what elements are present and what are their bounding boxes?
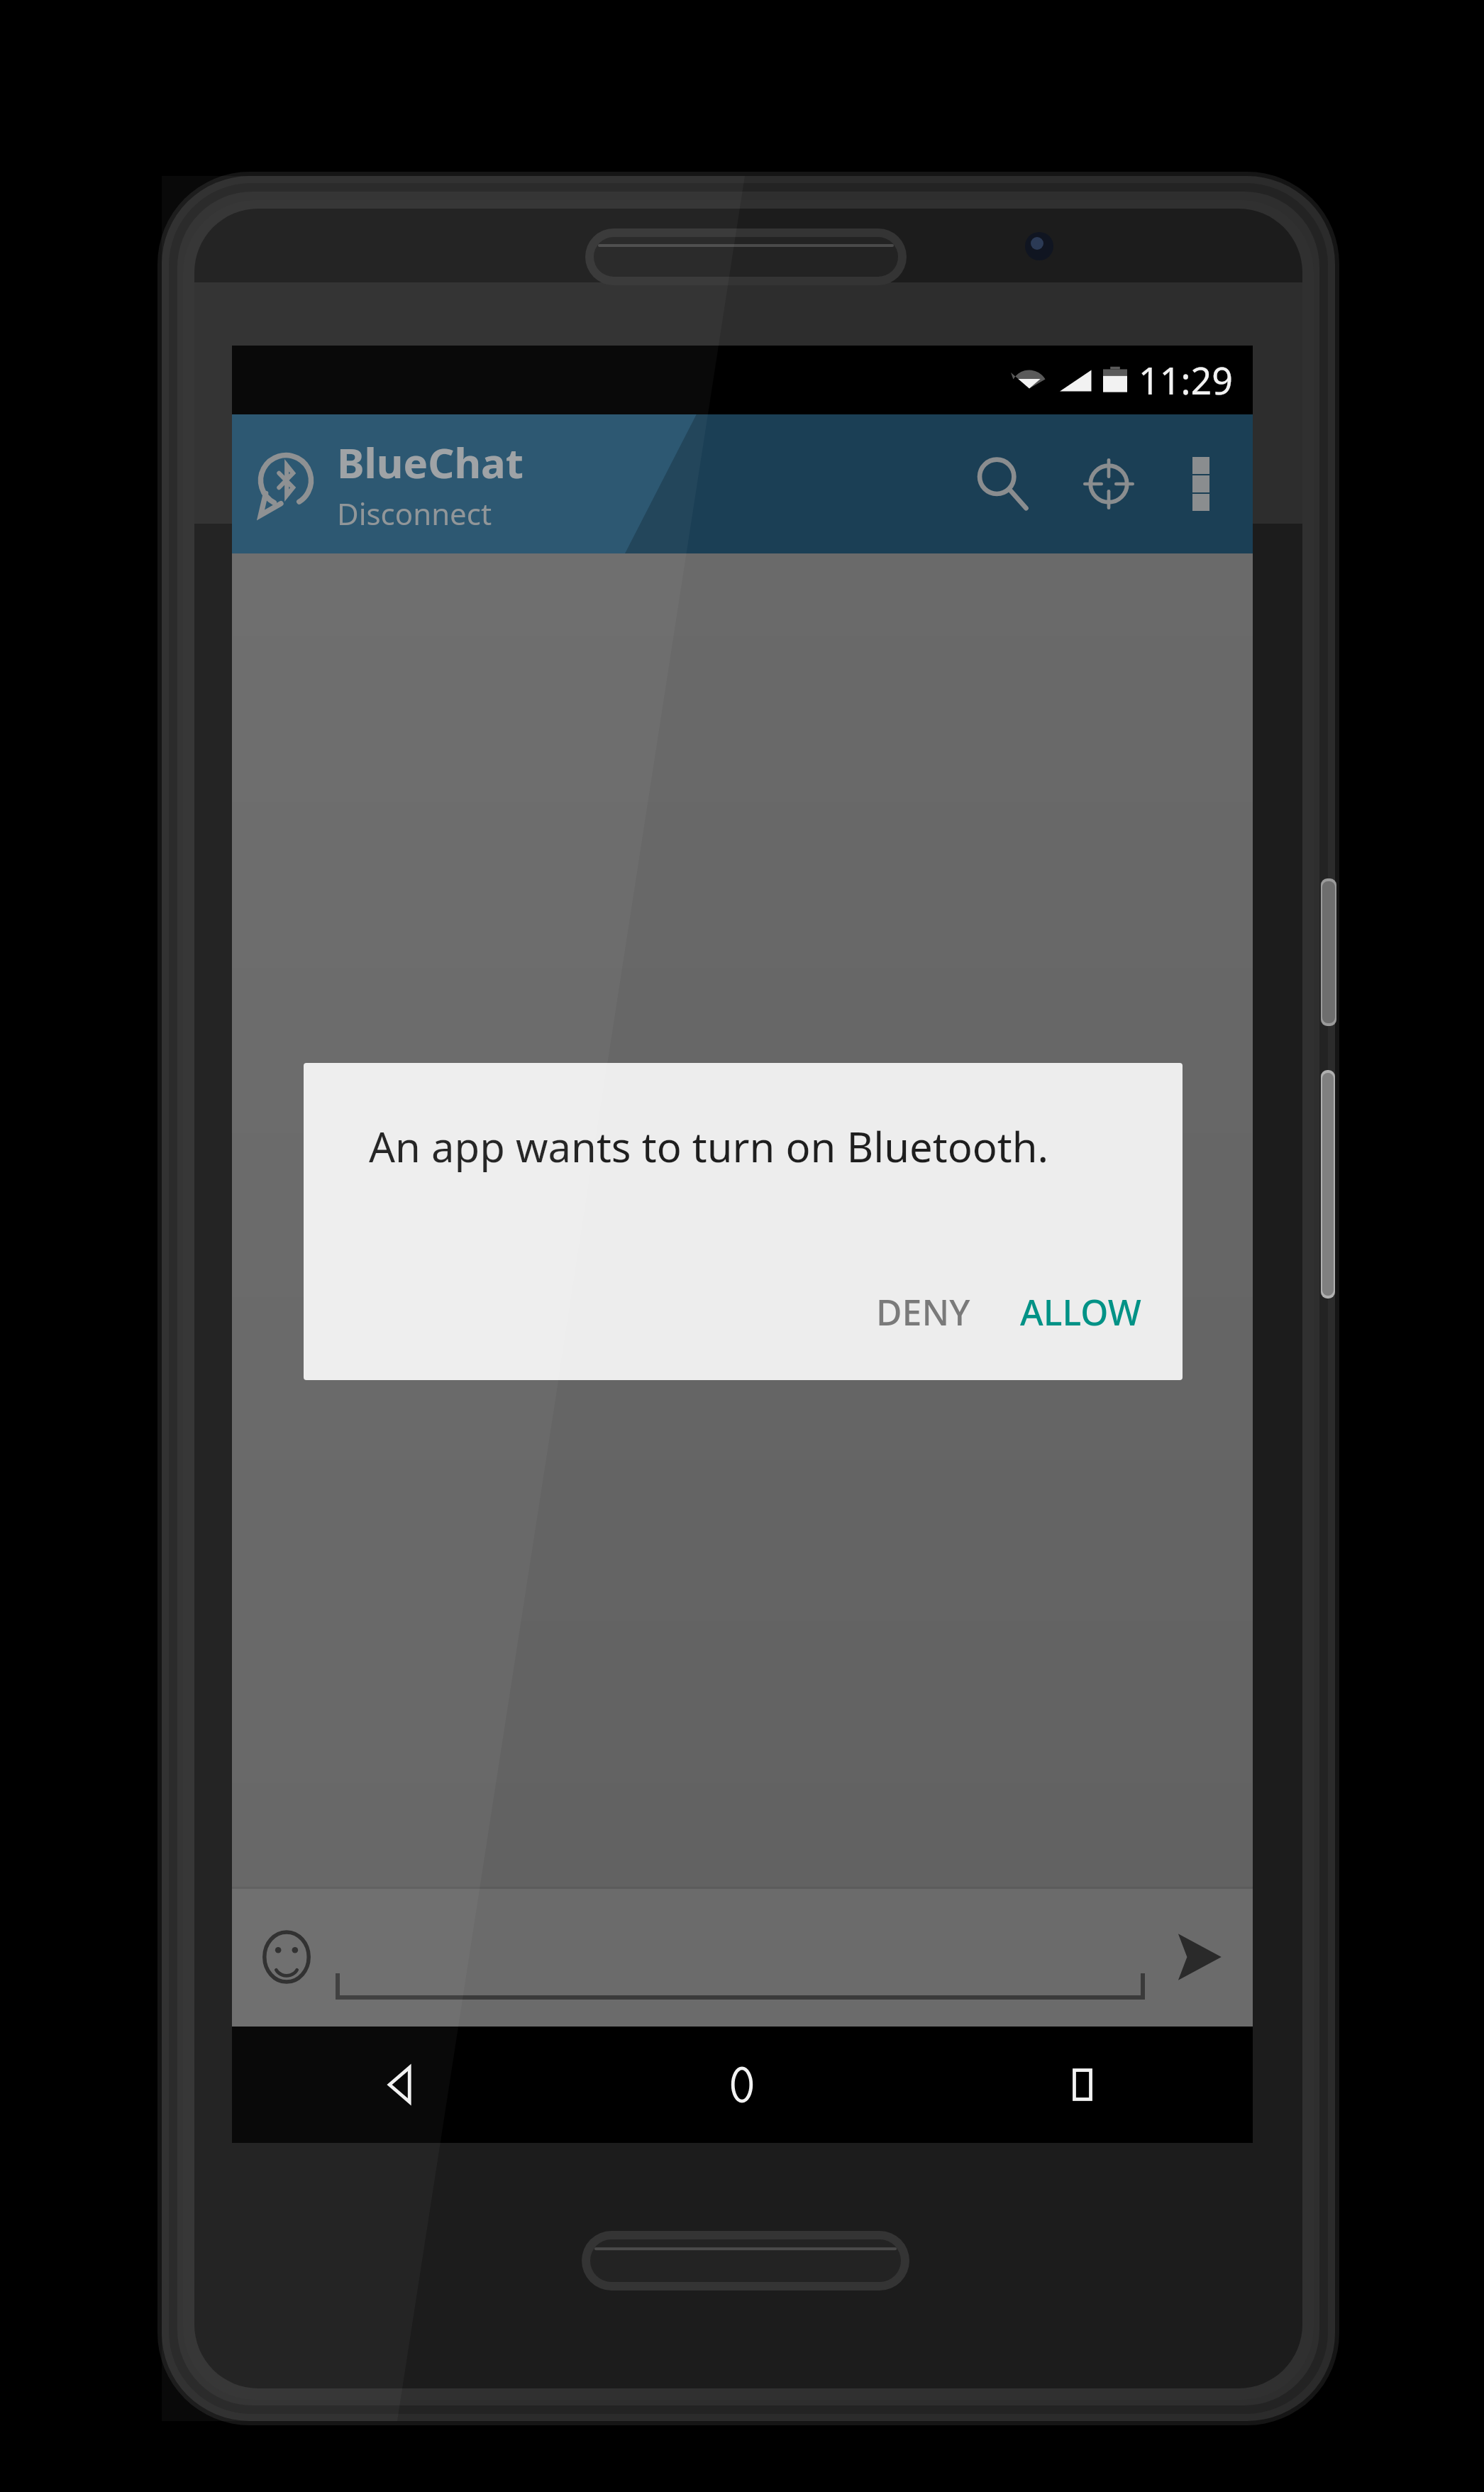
button[interactable]: Search <box>949 414 1056 553</box>
button[interactable]: DENY <box>855 1277 992 1347</box>
button[interactable]: Recent apps <box>912 2027 1253 2143</box>
staticText: ALLOW <box>1020 1288 1141 1336</box>
button[interactable]: Back <box>232 2027 572 2143</box>
staticText: An app wants to turn on Bluetooth. <box>369 1118 1049 1174</box>
staticText: 11:29 <box>1139 355 1233 405</box>
button[interactable]: Home <box>572 2027 912 2143</box>
staticText: Disconnect <box>337 493 492 534</box>
staticText: BlueChat <box>337 434 524 490</box>
button[interactable]: Send message <box>1159 1918 1237 1996</box>
staticText: DENY <box>876 1288 970 1336</box>
button[interactable]: More options <box>1162 414 1240 553</box>
button[interactable]: ALLOW <box>999 1277 1163 1347</box>
button[interactable]: Discover devices <box>1056 414 1162 553</box>
button[interactable]: Insert emoji <box>248 1918 326 1996</box>
